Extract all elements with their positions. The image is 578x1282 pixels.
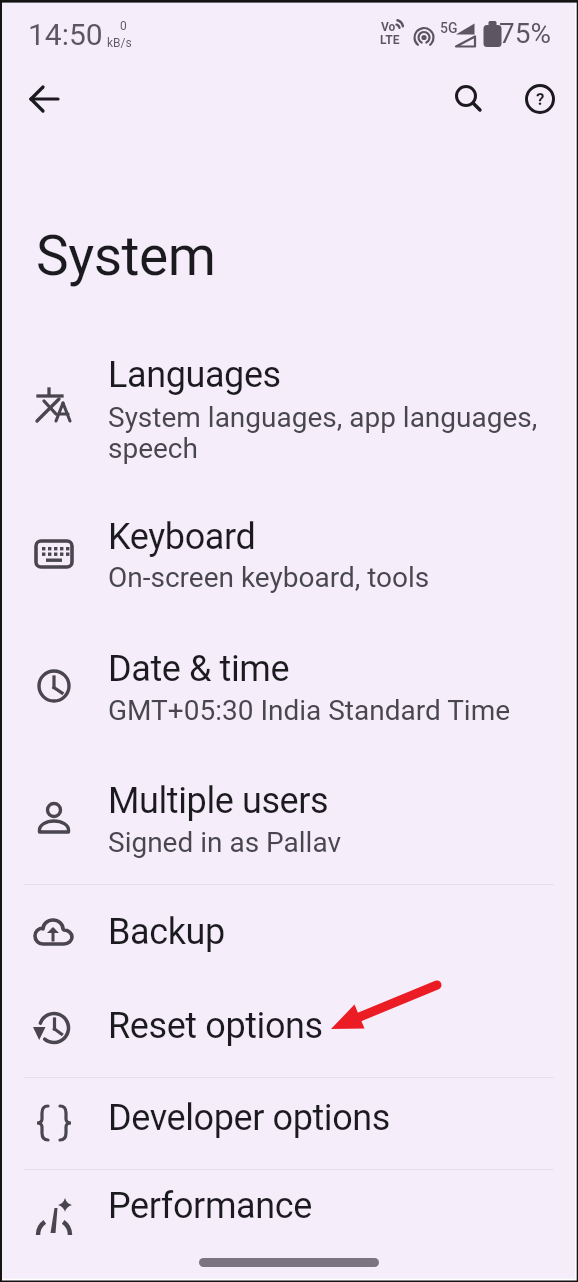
button[interactable]: Keyboard: [0, 490, 578, 622]
button[interactable]: [19, 75, 67, 123]
button[interactable]: Reset options: [0, 982, 578, 1076]
button[interactable]: [516, 75, 564, 123]
button[interactable]: Languages: [0, 340, 578, 490]
staticText: Performance: [108, 1185, 312, 1227]
staticText: Keyboard: [108, 516, 256, 558]
button[interactable]: Performance: [0, 1171, 578, 1247]
staticText: System languages, app languages, speech: [108, 401, 538, 464]
staticText: 5G: [440, 20, 458, 36]
button[interactable]: Multiple users: [0, 755, 578, 884]
staticText: 75%: [499, 17, 551, 50]
staticText: 0: [120, 19, 127, 33]
staticText: Developer options: [108, 1097, 390, 1139]
button[interactable]: [442, 72, 490, 120]
staticText: Languages: [108, 354, 281, 396]
button[interactable]: Date & time: [0, 622, 578, 755]
staticText: On-screen keyboard, tools: [108, 561, 430, 594]
staticText: 14:50: [28, 17, 103, 52]
staticText: Multiple users: [108, 780, 329, 822]
staticText: LTE: [380, 33, 400, 47]
button[interactable]: [199, 1250, 379, 1276]
button[interactable]: Backup: [0, 886, 578, 982]
staticText: Signed in as Pallav: [108, 826, 341, 859]
staticText: Backup: [108, 911, 225, 953]
staticText: Vo: [381, 20, 396, 34]
staticText: Date & time: [108, 648, 290, 690]
staticText: kB/s: [107, 36, 132, 50]
staticText: Reset options: [108, 1005, 323, 1047]
staticText: ?: [536, 89, 545, 109]
button[interactable]: Developer options: [0, 1079, 578, 1168]
staticText: System: [36, 224, 216, 288]
staticText: GMT+05:30 India Standard Time: [108, 694, 511, 727]
